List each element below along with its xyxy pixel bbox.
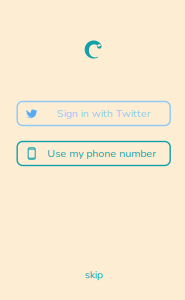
button[interactable]: Sign in with Twitter [17, 101, 170, 125]
staticText: Use my phone number [47, 146, 156, 161]
staticText: skip [85, 267, 103, 282]
button[interactable]: skip [73, 262, 115, 287]
staticText: Sign in with Twitter [57, 106, 151, 121]
button[interactable]: Use my phone number [17, 141, 170, 165]
